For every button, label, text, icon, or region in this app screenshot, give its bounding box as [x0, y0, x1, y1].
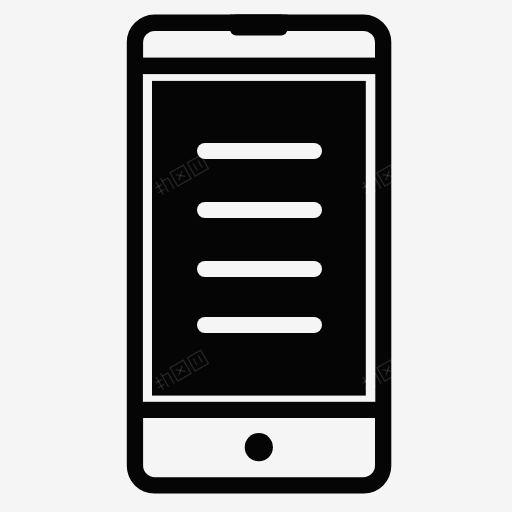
- button[interactable]: List item 4: [197, 317, 322, 333]
- button[interactable]: List item 2: [197, 202, 322, 218]
- button[interactable]: Smartphone showing a list of items: [0, 0, 512, 512]
- button[interactable]: List item 3: [197, 261, 322, 277]
- button[interactable]: List item 1: [197, 143, 322, 159]
- button[interactable]: Home button: [245, 433, 273, 461]
